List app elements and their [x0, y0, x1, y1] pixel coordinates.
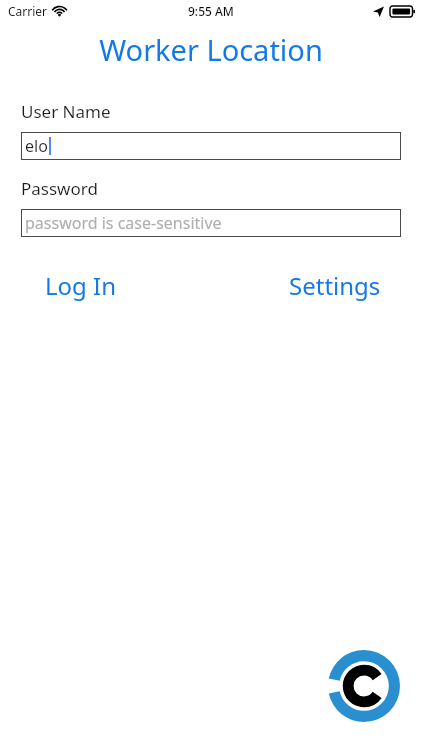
staticText: password is case-sensitive [25, 212, 222, 234]
staticText: User Name [21, 100, 111, 123]
button[interactable]: Settings [277, 263, 401, 308]
staticText: Password [21, 177, 98, 200]
button[interactable]: Log In [21, 263, 129, 308]
staticText: 9:55 AM [188, 3, 234, 19]
other: App logo [328, 650, 400, 722]
button[interactable]: password is case-sensitive [21, 209, 401, 237]
staticText: elo [25, 135, 48, 157]
staticText: Log In [45, 269, 117, 302]
staticText: Worker Location [0, 30, 422, 69]
button[interactable]: elo [21, 132, 401, 160]
staticText: Settings [289, 269, 381, 302]
staticText: Carrier [8, 3, 48, 19]
